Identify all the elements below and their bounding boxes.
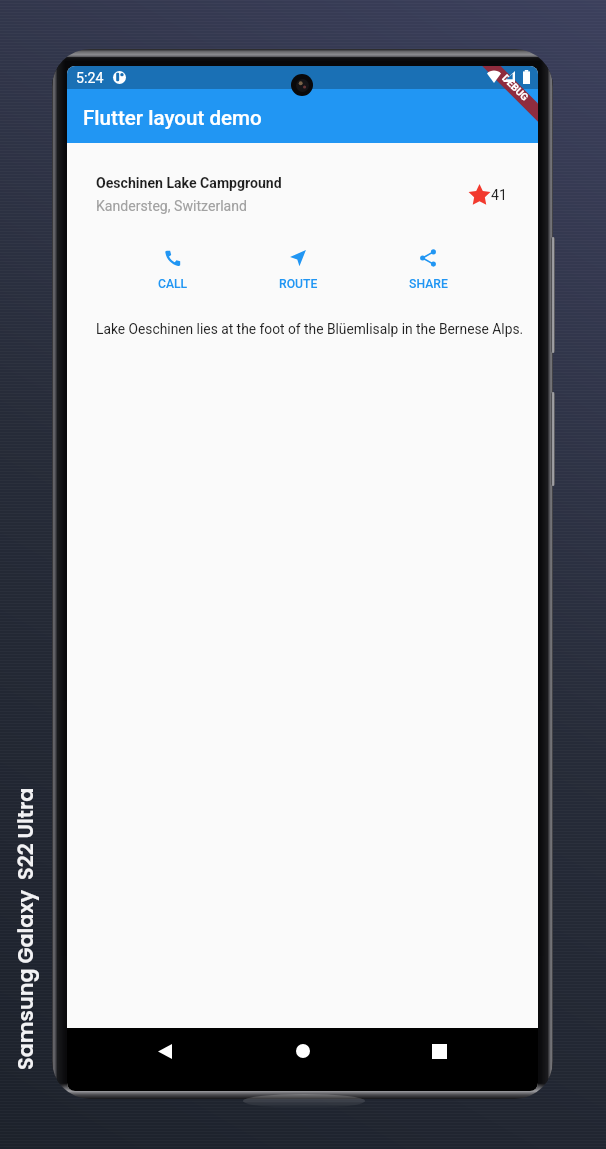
staticText: ROUTE — [279, 277, 318, 291]
staticText: Flutter layout demo — [83, 106, 262, 130]
button[interactable]: Back — [158, 1044, 172, 1059]
staticText: SHARE — [409, 277, 448, 291]
staticText: CALL — [158, 277, 188, 291]
staticText: 41 — [491, 187, 507, 204]
button[interactable]: Home — [296, 1044, 310, 1058]
staticText: DEBUG — [499, 72, 530, 103]
staticText: Samsung Galaxy S22 Ultra — [11, 787, 40, 1070]
button[interactable]: SHARE — [390, 243, 466, 291]
button[interactable]: ROUTE — [260, 243, 336, 291]
staticText: Oeschinen Lake Campground — [96, 175, 282, 192]
staticText: Kandersteg, Switzerland — [96, 198, 247, 215]
button[interactable]: CALL — [135, 243, 211, 291]
staticText: Lake Oeschinen lies at the foot of the B… — [96, 321, 524, 337]
staticText: 5:24 — [76, 70, 104, 87]
